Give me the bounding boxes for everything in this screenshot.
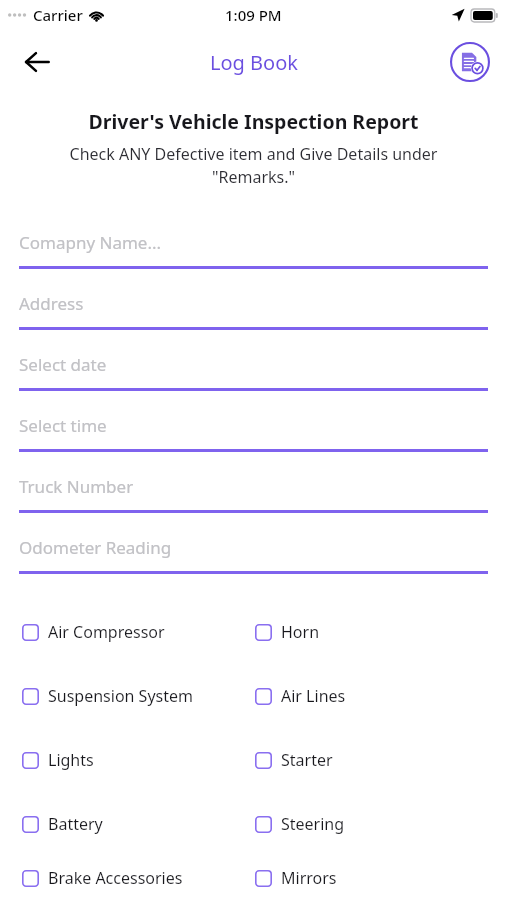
button[interactable]: Comapny Name... bbox=[19, 219, 488, 280]
button[interactable]: Steering bbox=[255, 807, 507, 841]
staticText: Address bbox=[19, 292, 84, 315]
staticText: Horn bbox=[281, 621, 320, 643]
staticText: Select date bbox=[19, 353, 107, 376]
button[interactable]: Inspection report bbox=[448, 40, 492, 84]
button[interactable]: Battery bbox=[22, 807, 253, 841]
staticText: Brake Accessories bbox=[48, 867, 183, 889]
button[interactable]: Air Lines bbox=[255, 679, 507, 713]
staticText: Driver's Vehicle Inspection Report bbox=[0, 108, 507, 135]
staticText: 1:09 PM bbox=[225, 5, 282, 25]
button[interactable]: Back bbox=[12, 37, 62, 87]
staticText: Starter bbox=[281, 749, 333, 771]
staticText: Comapny Name... bbox=[19, 231, 162, 254]
staticText: Air Compressor bbox=[48, 621, 165, 643]
staticText: Odometer Reading bbox=[19, 536, 172, 559]
button[interactable]: Odometer Reading bbox=[19, 524, 488, 585]
staticText: Mirrors bbox=[281, 867, 337, 889]
button[interactable]: Suspension System bbox=[22, 679, 253, 713]
button[interactable]: Horn bbox=[255, 615, 507, 649]
staticText: Check ANY Defective item and Give Detail… bbox=[45, 143, 462, 188]
staticText: Steering bbox=[281, 813, 345, 835]
button[interactable]: Brake Accessories bbox=[22, 861, 253, 895]
staticText: Carrier bbox=[33, 5, 83, 25]
button[interactable]: Select date bbox=[19, 341, 488, 402]
button[interactable]: Truck Number bbox=[19, 463, 488, 524]
button[interactable]: Lights bbox=[22, 743, 253, 777]
staticText: Battery bbox=[48, 813, 103, 835]
staticText: Suspension System bbox=[48, 685, 193, 707]
button[interactable]: Air Compressor bbox=[22, 615, 253, 649]
staticText: Lights bbox=[48, 749, 94, 771]
button[interactable]: Address bbox=[19, 280, 488, 341]
staticText: Truck Number bbox=[19, 475, 134, 498]
staticText: Select time bbox=[19, 414, 107, 437]
button[interactable]: Mirrors bbox=[255, 861, 507, 895]
button[interactable]: Starter bbox=[255, 743, 507, 777]
staticText: Log Book bbox=[210, 49, 298, 76]
staticText: Air Lines bbox=[281, 685, 346, 707]
button[interactable]: Select time bbox=[19, 402, 488, 463]
